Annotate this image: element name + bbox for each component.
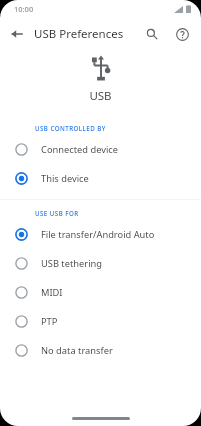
button[interactable]: PTP	[0, 307, 201, 336]
button[interactable]: MIDI	[0, 278, 201, 307]
staticText: USB CONTROLLED BY	[35, 124, 106, 132]
button[interactable]: No data transfer	[0, 336, 201, 365]
staticText: USE USB FOR	[35, 209, 79, 217]
button[interactable]: Connected device	[0, 135, 201, 164]
button[interactable]: Back	[4, 21, 30, 47]
staticText: No data transfer	[41, 344, 113, 357]
button[interactable]: This device	[0, 164, 201, 193]
staticText: PTP	[41, 315, 58, 328]
staticText: USB tethering	[41, 257, 103, 270]
staticText: 10:00	[14, 4, 34, 14]
staticText: USB	[89, 88, 112, 104]
button[interactable]: File transfer/Android Auto	[0, 220, 201, 249]
button[interactable]: Help	[169, 21, 195, 47]
staticText: File transfer/Android Auto	[41, 228, 155, 241]
staticText: USB Preferences	[34, 26, 124, 42]
staticText: MIDI	[41, 286, 63, 299]
button[interactable]: USB tethering	[0, 249, 201, 278]
button[interactable]: Search	[139, 21, 165, 47]
staticText: Connected device	[41, 143, 119, 156]
staticText: This device	[41, 172, 89, 185]
